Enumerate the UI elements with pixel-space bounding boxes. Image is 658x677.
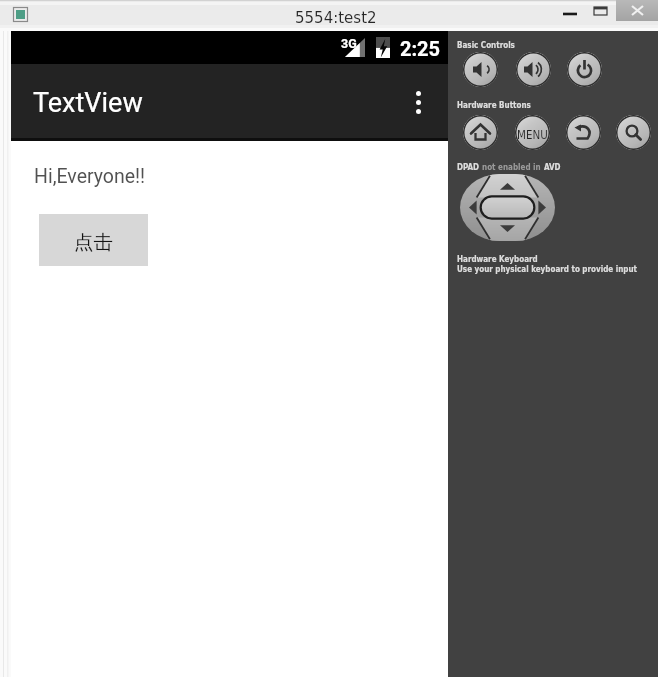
button[interactable]: Maximize [585,0,616,21]
staticText: 点击 [74,230,113,255]
staticText: Hardware Buttons [457,101,531,110]
button[interactable]: Volume up [516,52,551,87]
staticText: Hardware Keyboard [457,255,538,264]
button[interactable]: D-pad [460,174,555,241]
button[interactable]: Power [567,52,602,87]
button[interactable]: Back [566,115,601,150]
button[interactable]: Minimize [554,0,585,21]
staticText: DPAD [457,163,482,172]
staticText: not enabled in [482,163,544,172]
button[interactable]: Home [463,115,498,150]
staticText: MENU [517,128,548,141]
staticText: Use your physical keyboard to provide in… [457,265,637,274]
staticText: 5554:test2 [295,9,377,26]
button[interactable]: Close [616,0,658,21]
button[interactable]: Volume down [463,52,498,87]
staticText: AVD [544,163,561,172]
staticText: TextView [33,87,143,119]
staticText: Hi,Everyone!! [34,165,146,188]
staticText: Basic Controls [457,41,515,50]
staticText: 2:25 [400,37,441,60]
staticText: 3G [341,36,357,51]
button[interactable]: MENU [515,115,550,150]
button[interactable]: More options [389,64,448,141]
button[interactable]: 点击 [39,214,148,266]
button[interactable]: Search [616,115,651,150]
